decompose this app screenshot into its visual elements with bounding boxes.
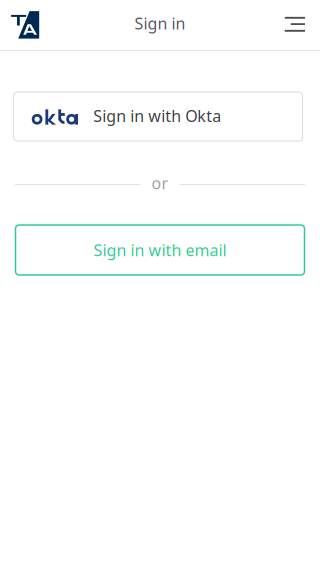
staticText: Sign in [134, 13, 185, 34]
staticText: Sign in with Okta [93, 105, 221, 126]
staticText: Sign in with email [93, 239, 226, 261]
button[interactable]: Sign in with email [15, 225, 304, 275]
button[interactable]: Menu [271, 0, 320, 51]
button[interactable]: Home [0, 0, 45, 51]
button[interactable]: Sign in with Okta [13, 92, 302, 141]
staticText: or [151, 172, 168, 194]
